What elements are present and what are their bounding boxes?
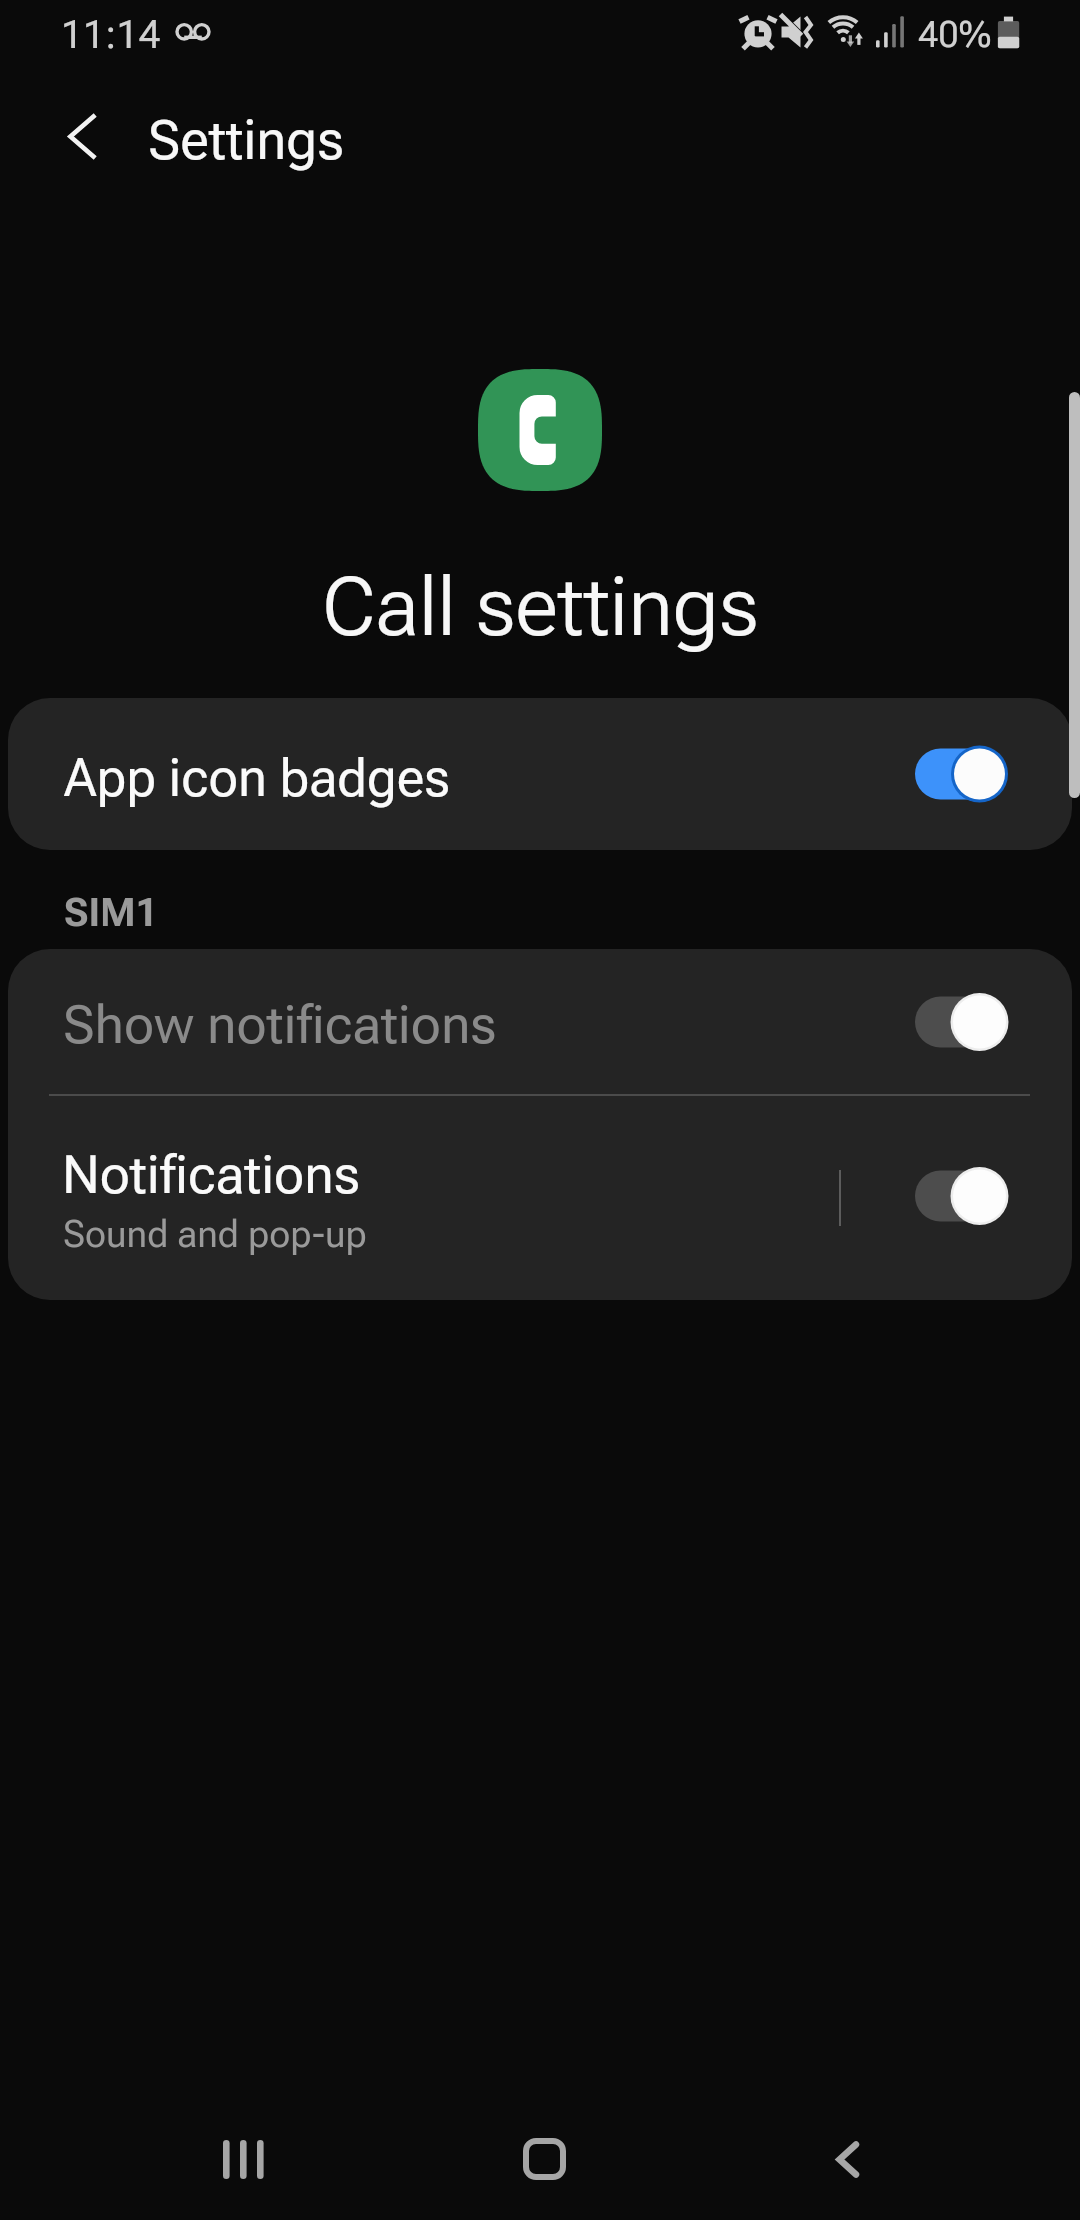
staticText: 40% <box>918 14 992 56</box>
staticText: App icon badges <box>64 748 450 809</box>
button[interactable]: Navigate up <box>38 92 128 182</box>
button[interactable]: Recent apps <box>143 2090 343 2210</box>
staticText: Call settings <box>322 560 759 655</box>
button[interactable]: Off <box>905 1158 1021 1234</box>
button[interactable]: Back <box>746 2090 946 2210</box>
staticText: Settings <box>148 109 344 172</box>
staticText: Notifications <box>62 1144 360 1206</box>
staticText: Sound and pop-up <box>63 1213 367 1256</box>
button[interactable]: Notifications <box>8 1096 1072 1300</box>
staticText: 11:14 <box>61 12 161 58</box>
button[interactable]: On <box>905 736 1021 812</box>
staticText: SIM1 <box>64 890 158 936</box>
staticText: Show notifications <box>63 994 497 1056</box>
button[interactable]: Home <box>444 2090 644 2210</box>
button[interactable]: Show notifications <box>8 949 1072 1094</box>
button[interactable]: App icon badges <box>8 698 1072 850</box>
button[interactable]: Off <box>905 984 1021 1060</box>
